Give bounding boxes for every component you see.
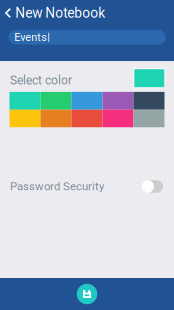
staticText: Events (14, 31, 47, 44)
button[interactable]: Colour swatch (9, 110, 40, 127)
button[interactable]: Colour swatch (102, 92, 133, 110)
button[interactable]: Colour swatch (71, 110, 102, 127)
staticText: Select color (10, 73, 72, 87)
button[interactable]: Password Security (141, 180, 163, 193)
button[interactable]: Save (77, 284, 97, 304)
button[interactable]: Colour swatch (133, 92, 164, 110)
button[interactable]: Colour swatch (9, 92, 40, 110)
staticText: Password Security (10, 180, 104, 193)
button[interactable]: Colour swatch (133, 110, 164, 127)
button[interactable]: Colour swatch (71, 92, 102, 110)
button[interactable]: Colour swatch (40, 110, 71, 127)
button[interactable]: Events (8, 30, 165, 44)
button[interactable]: Selected colour (133, 68, 165, 88)
button[interactable]: Back (0, 0, 113, 26)
staticText: New Notebook (15, 5, 105, 21)
button[interactable]: Colour swatch (40, 92, 71, 110)
button[interactable]: Colour swatch (102, 110, 133, 127)
